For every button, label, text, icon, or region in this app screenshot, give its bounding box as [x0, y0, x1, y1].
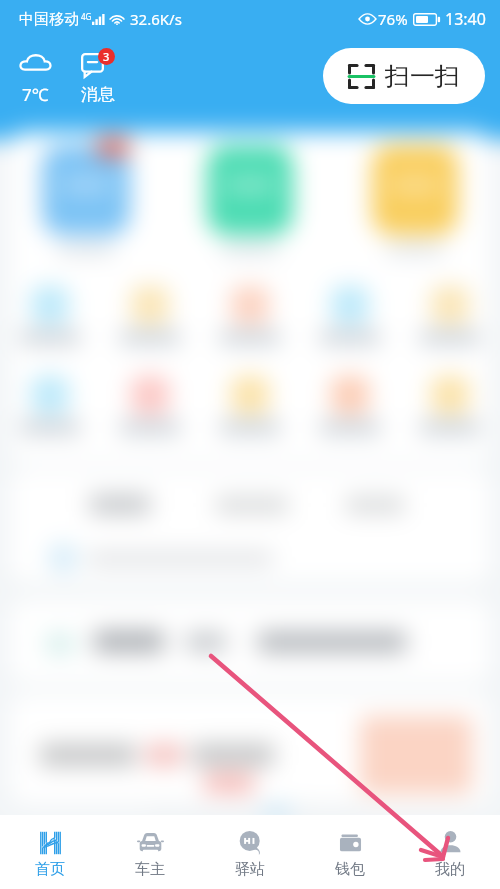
button[interactable]: 我的: [400, 818, 500, 886]
staticText: 13:40: [445, 8, 486, 30]
staticText: 3: [103, 49, 110, 64]
staticText: 首页: [35, 860, 65, 879]
staticText: 扫一扫: [385, 61, 460, 92]
staticText: 76%: [378, 9, 408, 29]
button[interactable]: 车主: [100, 818, 200, 886]
staticText: 驿站: [235, 860, 265, 879]
button[interactable]: 扫一扫: [323, 48, 485, 104]
staticText: 车主: [135, 860, 165, 879]
staticText: 7℃: [22, 83, 49, 106]
button[interactable]: 钱包: [300, 818, 400, 886]
staticText: 消息: [81, 84, 115, 105]
button[interactable]: 3: [76, 46, 120, 107]
staticText: 我的: [435, 860, 465, 879]
button[interactable]: 驿站: [200, 818, 300, 886]
staticText: 4G: [81, 11, 92, 22]
staticText: 中国移动: [19, 10, 79, 29]
button[interactable]: 7℃: [14, 50, 57, 108]
staticText: 32.6K/s: [130, 9, 182, 29]
button[interactable]: 首页: [0, 818, 100, 886]
staticText: 钱包: [335, 860, 365, 879]
